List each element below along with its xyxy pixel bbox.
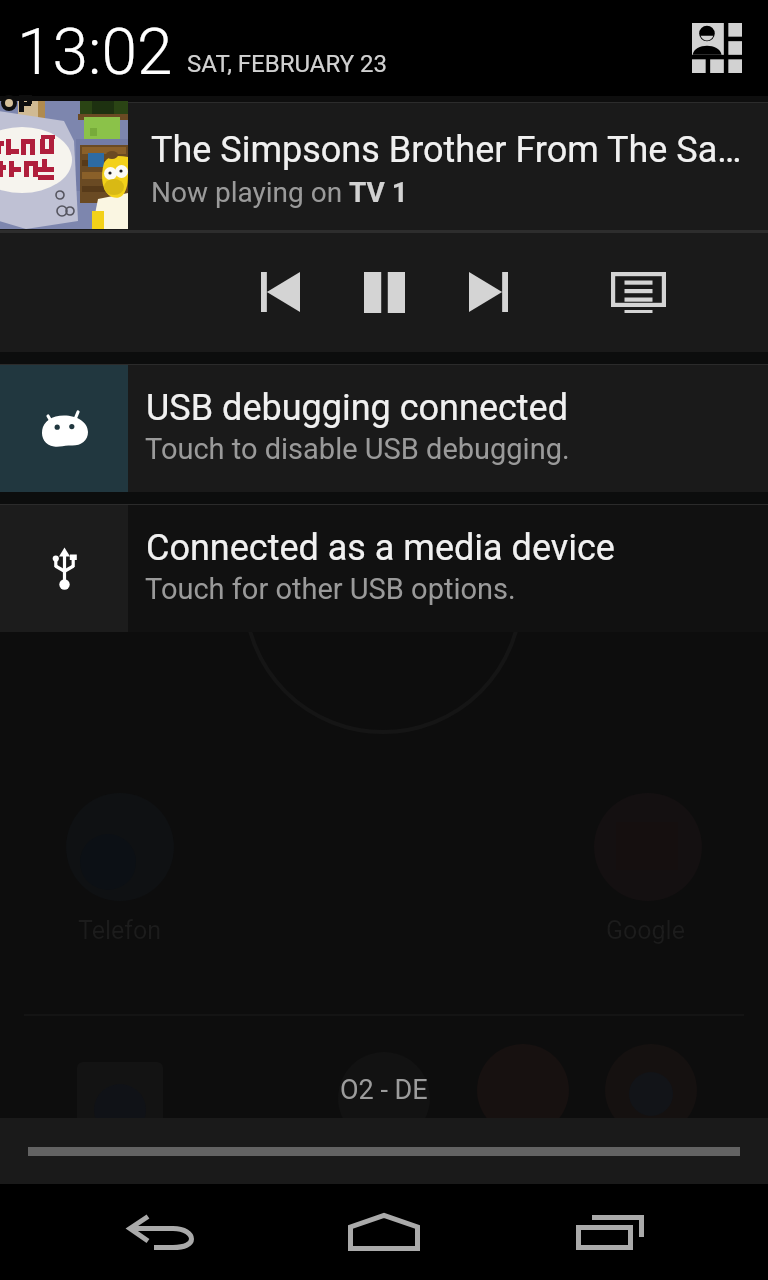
staticText: USB debugging connected (146, 387, 568, 429)
button[interactable]: Connected as a media device (0, 504, 768, 632)
button[interactable]: Pause (340, 248, 428, 336)
staticText: Telefon (78, 916, 162, 945)
button[interactable]: Close notification shade (0, 1118, 768, 1184)
staticText: Google (606, 916, 685, 945)
staticText: Now playing on TV 1 (151, 176, 408, 209)
button[interactable]: Quick settings (679, 10, 755, 86)
staticText: O2 - DE (340, 1074, 428, 1106)
staticText: 13:02 (17, 15, 173, 90)
button[interactable]: Recent apps (562, 1194, 658, 1270)
button[interactable]: The Simpsons Brother From The Sa… (0, 96, 768, 352)
button[interactable]: Next (444, 248, 532, 336)
button[interactable]: Subtitles (594, 248, 682, 336)
staticText: SAT, FEBRUARY 23 (187, 50, 388, 78)
button[interactable]: USB debugging connected (0, 364, 768, 492)
button[interactable]: Previous (236, 248, 324, 336)
button[interactable]: Back (112, 1194, 208, 1270)
staticText: Touch for other USB options. (145, 572, 516, 606)
button[interactable]: Home (336, 1194, 432, 1270)
staticText: The Simpsons Brother From The Sa… (151, 129, 742, 171)
staticText: Touch to disable USB debugging. (145, 432, 570, 466)
staticText: Connected as a media device (146, 527, 615, 569)
